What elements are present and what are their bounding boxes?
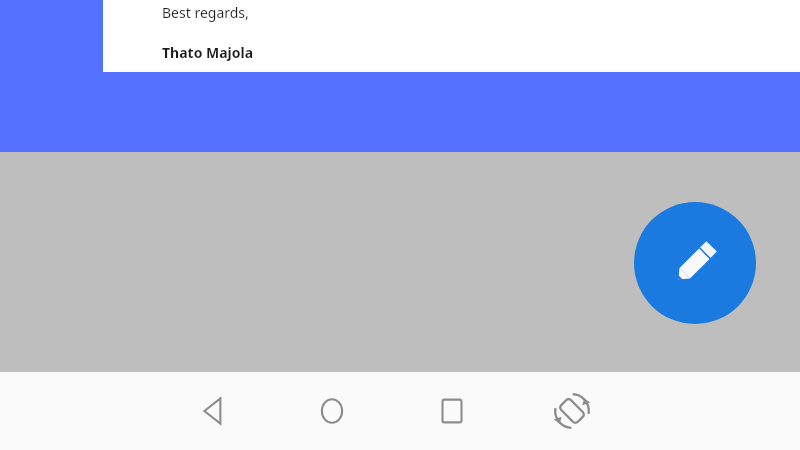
staticText: Best regards, <box>162 3 249 22</box>
button[interactable]: Recents <box>400 372 504 450</box>
button[interactable]: Home <box>280 372 384 450</box>
staticText: Thato Majola <box>162 43 254 62</box>
button[interactable]: Best regards, <box>103 0 800 72</box>
button[interactable]: Rotate screen <box>520 372 624 450</box>
button[interactable]: Compose <box>634 202 756 324</box>
button[interactable]: Back <box>160 372 264 450</box>
